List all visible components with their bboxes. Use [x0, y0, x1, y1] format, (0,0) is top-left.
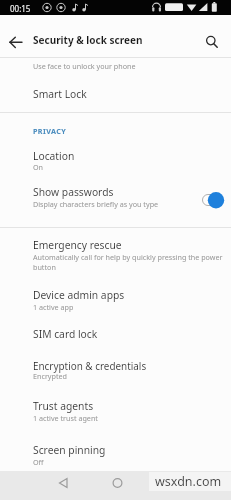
- staticText: Emergency rescue: [33, 238, 122, 252]
- button[interactable]: [102, 470, 134, 498]
- button[interactable]: [0, 318, 231, 350]
- button[interactable]: [0, 76, 231, 112]
- staticText: Encryption & credentials: [33, 359, 147, 372]
- staticText: PRIVACY: [33, 126, 67, 136]
- staticText: Device admin apps: [33, 288, 125, 302]
- button[interactable]: [0, 437, 231, 471]
- staticText: Display characters briefly as you type: [33, 199, 159, 209]
- staticText: Location: [33, 149, 75, 163]
- staticText: Off: [33, 457, 44, 467]
- button[interactable]: [0, 177, 231, 227]
- staticText: button: [33, 262, 56, 272]
- button[interactable]: [0, 351, 231, 386]
- staticText: Automatically call for help by quickly p…: [33, 252, 223, 262]
- button[interactable]: [197, 27, 227, 57]
- button[interactable]: [0, 229, 231, 277]
- staticText: wsxdn.com: [155, 473, 222, 490]
- staticText: SIM card lock: [33, 327, 98, 341]
- staticText: 1 active trust agent: [33, 413, 98, 423]
- staticText: Use face to unlock your phone: [33, 61, 136, 71]
- staticText: Screen pinning: [33, 443, 106, 457]
- staticText: 00:15: [10, 3, 31, 14]
- button[interactable]: [2, 27, 30, 57]
- button[interactable]: [0, 144, 231, 175]
- button[interactable]: [48, 470, 80, 498]
- staticText: Trust agents: [33, 399, 94, 413]
- staticText: Smart Lock: [33, 87, 87, 101]
- button[interactable]: [0, 392, 231, 428]
- staticText: Encrypted: [33, 371, 68, 381]
- button[interactable]: [199, 189, 227, 211]
- staticText: 1 active app: [33, 302, 74, 312]
- staticText: Show passwords: [33, 185, 114, 199]
- button[interactable]: [0, 282, 231, 318]
- staticText: On: [33, 162, 44, 172]
- staticText: Security & lock screen: [33, 33, 143, 47]
